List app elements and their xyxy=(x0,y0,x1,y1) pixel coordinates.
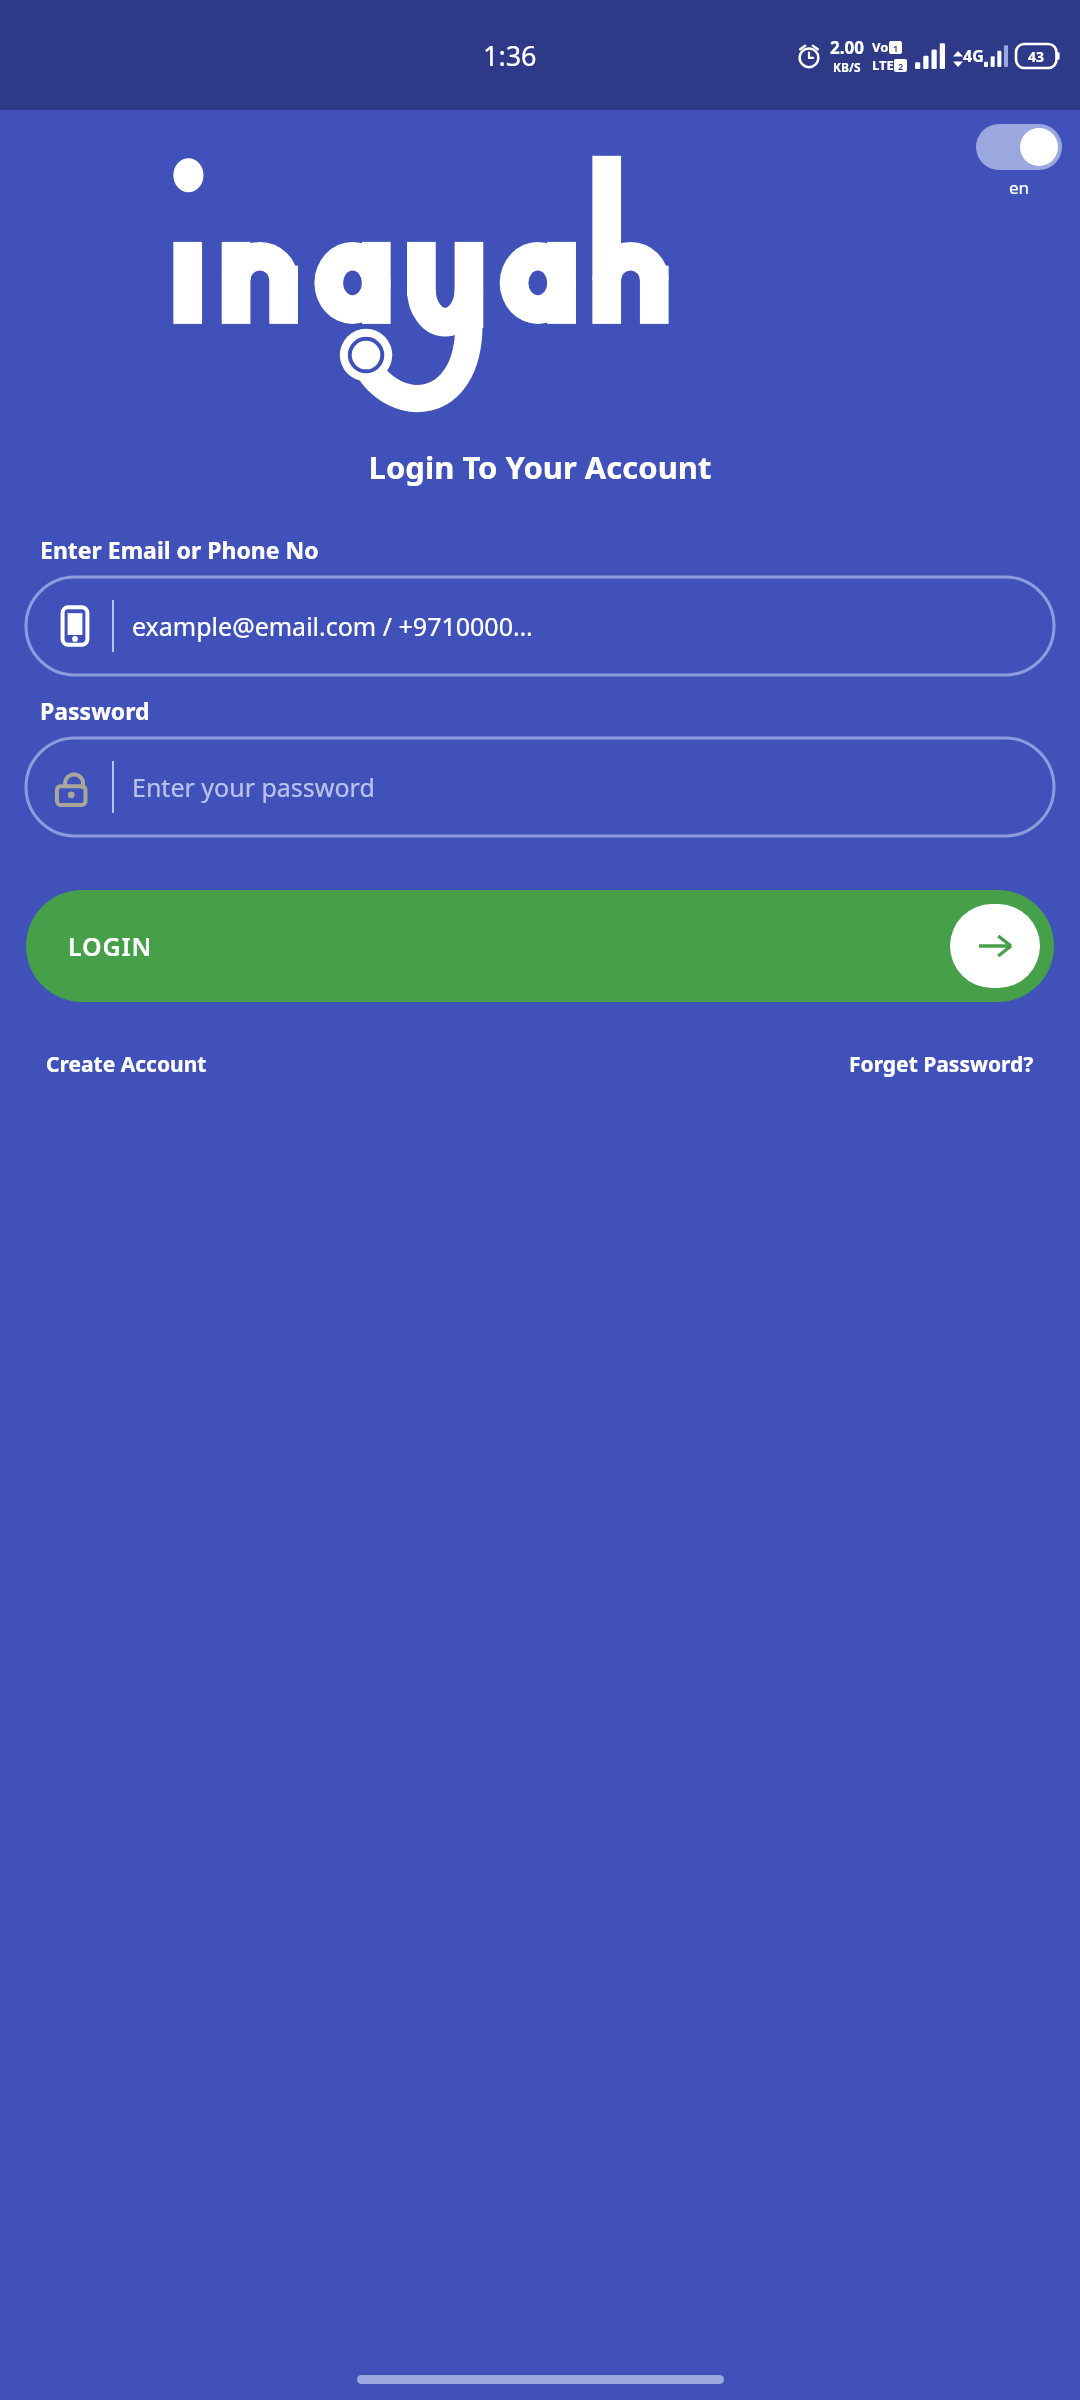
staticText: 2.00 xyxy=(830,36,864,59)
staticText: Vo xyxy=(872,38,889,56)
other: Login xyxy=(950,904,1040,988)
staticText: 2 xyxy=(898,60,904,72)
staticText: Create Account xyxy=(46,1050,207,1079)
staticText: Enter your password xyxy=(132,770,1036,804)
staticText: 1:36 xyxy=(483,37,537,74)
staticText: en xyxy=(1009,176,1030,199)
button[interactable]: Change language xyxy=(976,124,1062,170)
staticText: Enter Email or Phone No xyxy=(40,534,1080,565)
staticText: Forget Password? xyxy=(849,1050,1034,1079)
button[interactable]: Enter your password xyxy=(26,738,1054,836)
staticText: LTE xyxy=(872,56,894,74)
button[interactable]: Forget Password? xyxy=(843,1044,1040,1085)
staticText: 4G xyxy=(963,45,984,67)
staticText: KB/S xyxy=(833,59,861,75)
staticText: LOGIN xyxy=(68,929,153,963)
staticText: 43 xyxy=(1028,47,1045,66)
staticText: Password xyxy=(40,695,1080,726)
button[interactable]: Create Account xyxy=(40,1044,213,1085)
button[interactable]: example@email.com / +9710000… xyxy=(26,577,1054,675)
button[interactable]: LOGIN xyxy=(26,890,1054,1002)
staticText: 1 xyxy=(893,42,899,54)
staticText: Login To Your Account xyxy=(0,446,1080,488)
staticText: example@email.com / +9710000… xyxy=(132,609,1036,643)
